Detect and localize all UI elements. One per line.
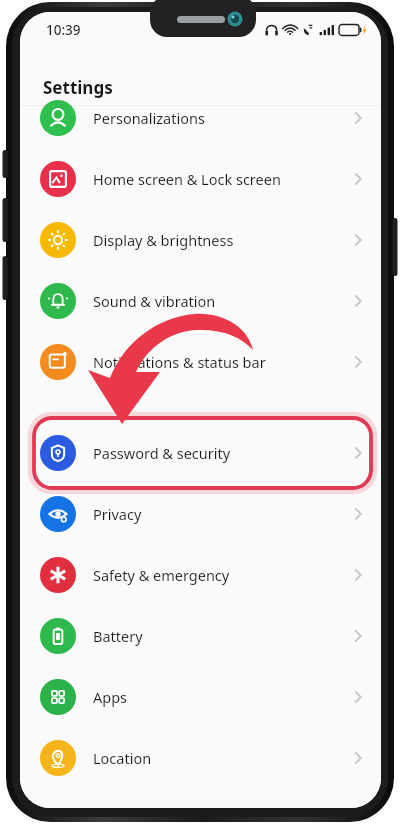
button[interactable]: Safety & emergency: [20, 544, 381, 605]
other: Open Location: [349, 748, 369, 768]
button[interactable]: Personalizations: [20, 87, 381, 148]
staticText: Notifications & status bar: [93, 352, 349, 372]
button[interactable]: Battery: [20, 605, 381, 666]
staticText: Personalizations: [93, 108, 349, 128]
other: Open Privacy: [349, 504, 369, 524]
staticText: Battery: [93, 626, 349, 646]
button[interactable]: Notifications & status bar: [20, 331, 381, 392]
other: Open Password & security: [349, 443, 369, 463]
other: Open Display & brightness: [349, 230, 369, 250]
staticText: Display & brightness: [93, 230, 349, 250]
button[interactable]: Password & security: [20, 422, 381, 483]
other: Open Battery: [349, 626, 369, 646]
staticText: Location: [93, 748, 349, 768]
staticText: Apps: [93, 687, 349, 707]
button[interactable]: Display & brightness: [20, 209, 381, 270]
button[interactable]: Privacy: [20, 483, 381, 544]
other: Open Apps: [349, 687, 369, 707]
staticText: Privacy: [93, 504, 349, 524]
staticText: Password & security: [93, 443, 349, 463]
staticText: Home screen & Lock screen: [93, 169, 349, 189]
button[interactable]: Sound & vibration: [20, 270, 381, 331]
staticText: 10:39: [46, 21, 81, 39]
other: Open Notifications & status bar: [349, 352, 369, 372]
staticText: Safety & emergency: [93, 565, 349, 585]
other: Open Sound & vibration: [349, 291, 369, 311]
button[interactable]: Home screen & Lock screen: [20, 148, 381, 209]
button[interactable]: Apps: [20, 666, 381, 727]
other: Open Home screen & Lock screen: [349, 169, 369, 189]
button[interactable]: Location: [20, 727, 381, 788]
other: Open Personalizations: [349, 108, 369, 128]
staticText: Sound & vibration: [93, 291, 349, 311]
staticText: Settings: [43, 76, 113, 99]
other: Open Safety & emergency: [349, 565, 369, 585]
